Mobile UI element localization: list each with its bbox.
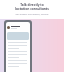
staticText: Get answers from experts, anytime <box>0 13 64 16</box>
staticText: Talk directly to <box>0 3 64 7</box>
staticText: lactation consultants <box>0 7 64 11</box>
